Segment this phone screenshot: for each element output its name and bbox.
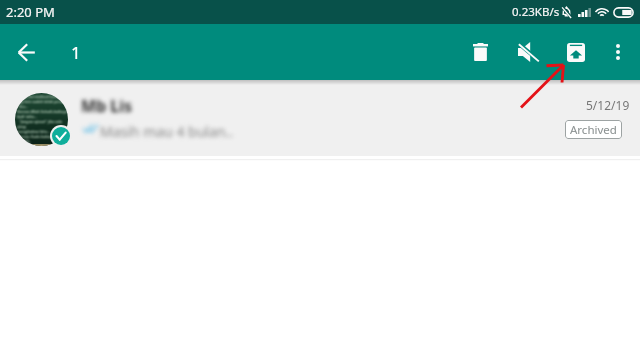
staticText: "Jangan ajusat" jika ada yang [17,119,68,129]
staticText: 0.23KB/s [512,4,560,20]
staticText: Mb Lis [81,95,133,117]
button[interactable]: Back [8,34,44,70]
button[interactable]: Delete [462,34,498,70]
button[interactable]: Mute [510,34,546,70]
staticText: menghakimi kita... [17,129,50,134]
staticText: Karena Allah Sebaik-baiknya [17,109,68,114]
button[interactable]: More options [602,36,634,68]
staticText: Archived [570,122,617,138]
staticText: karena Kuda balasan yang [17,134,65,139]
staticText: ..tika bermaksud baik yaa [17,94,65,99]
staticText: 1 [71,41,81,64]
button[interactable]: Archived [565,120,622,139]
staticText: lha... [17,104,28,109]
button[interactable]: ..tika bermaksud baik yaa [0,80,640,156]
staticText: i..LLAH.. [17,139,31,144]
staticText: 2:20 PM [6,3,55,21]
staticText: yg lain sudah tidak perduli [17,99,67,104]
staticText: baik taha... [17,114,37,119]
staticText: Masih mau 4 bulan.. [100,122,233,141]
staticText: 5/12/19 [586,97,630,113]
button[interactable]: Unarchive [558,34,594,70]
